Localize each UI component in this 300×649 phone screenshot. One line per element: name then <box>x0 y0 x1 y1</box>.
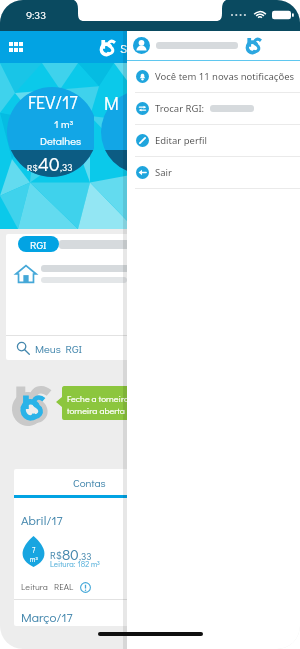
button[interactable]: RGI <box>18 236 59 252</box>
staticText: Março/17 <box>21 608 73 625</box>
staticText: 80 <box>62 544 79 564</box>
button[interactable]: Sair <box>127 157 300 188</box>
staticText: Leitura <box>21 581 48 593</box>
staticText: Sabesp Mobile <box>120 40 200 56</box>
staticText: 7 <box>32 546 36 555</box>
staticText: RGI <box>30 237 47 251</box>
button[interactable]: Você tem 11 novas notificações <box>127 61 300 92</box>
staticText: Você tem 11 novas notificações <box>155 70 295 83</box>
staticText: M <box>104 91 119 115</box>
button[interactable]: Meus RGI <box>6 336 294 360</box>
button[interactable]: Editar perfil <box>127 125 300 156</box>
staticText: Abril/17 <box>21 511 63 528</box>
staticText: Editar perfil <box>155 134 208 147</box>
staticText: R$ <box>27 162 38 174</box>
staticText: ,33 <box>79 550 92 563</box>
staticText: Sair <box>155 166 172 179</box>
staticText: Contas <box>73 475 106 489</box>
staticText: ,33 <box>60 161 73 174</box>
staticText: R$ <box>50 549 62 562</box>
staticText: REAL <box>54 581 74 593</box>
button[interactable] <box>127 31 300 60</box>
staticText: m³ <box>30 555 38 564</box>
staticText: Trocar RGI: <box>155 102 205 115</box>
button[interactable]: Trocar RGI: <box>127 93 300 124</box>
staticText: Meus RGI <box>35 341 83 355</box>
staticText: 40 <box>38 151 60 176</box>
button[interactable]: Contas <box>54 469 124 495</box>
staticText: Leitura: 182 m³ <box>50 559 100 569</box>
staticText: Detalhes <box>40 133 82 147</box>
staticText: 1 m³ <box>54 116 74 130</box>
staticText: 9:33 <box>26 7 47 21</box>
button[interactable]: Menu <box>4 35 28 59</box>
staticText: FEV/17 <box>28 90 78 114</box>
staticText: Feche a torneira ao escovar os dentes, u… <box>67 393 233 416</box>
